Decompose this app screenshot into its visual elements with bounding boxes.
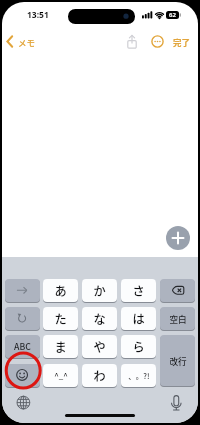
staticText: あ: [54, 282, 67, 300]
staticText: 、。?!: [128, 370, 150, 381]
button[interactable]: [43, 335, 78, 358]
staticText: な: [93, 310, 106, 328]
button[interactable]: [121, 279, 156, 302]
staticText: わ: [93, 367, 106, 385]
button[interactable]: [166, 393, 186, 412]
staticText: は: [132, 310, 145, 328]
staticText: た: [54, 310, 67, 328]
staticText: 改行: [169, 355, 187, 367]
button[interactable]: [4, 34, 16, 49]
staticText: メモ: [18, 36, 36, 48]
button[interactable]: [82, 335, 117, 358]
staticText: や: [93, 338, 106, 356]
button[interactable]: [166, 226, 190, 250]
staticText: ま: [54, 338, 67, 356]
button[interactable]: [121, 335, 156, 358]
button[interactable]: [43, 307, 78, 330]
button[interactable]: [160, 307, 195, 330]
button[interactable]: [43, 279, 78, 302]
button[interactable]: [124, 33, 140, 50]
staticText: 完了: [173, 36, 191, 48]
button[interactable]: [82, 364, 117, 387]
button[interactable]: [121, 307, 156, 330]
staticText: ら: [132, 338, 145, 356]
button[interactable]: 完了: [168, 35, 196, 48]
staticText: さ: [132, 282, 145, 300]
button[interactable]: [148, 33, 165, 50]
button[interactable]: [5, 364, 40, 387]
staticText: ABC: [14, 340, 31, 353]
staticText: 62: [169, 11, 176, 19]
button[interactable]: メモ: [14, 35, 40, 48]
button[interactable]: [5, 279, 40, 302]
button[interactable]: [5, 307, 40, 330]
button[interactable]: [82, 279, 117, 302]
staticText: 13:51: [27, 9, 49, 21]
button[interactable]: [121, 364, 156, 387]
button[interactable]: [13, 393, 33, 412]
button[interactable]: [5, 335, 40, 358]
button[interactable]: [160, 279, 195, 302]
staticText: ^_^: [54, 370, 68, 382]
staticText: 空白: [169, 313, 187, 325]
button[interactable]: [82, 307, 117, 330]
staticText: か: [93, 282, 106, 300]
button[interactable]: [43, 364, 78, 387]
button[interactable]: [160, 335, 195, 386]
